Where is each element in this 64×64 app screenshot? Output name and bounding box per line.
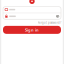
button[interactable]	[3, 13, 61, 19]
staticText: Sign in	[25, 27, 39, 32]
button[interactable]: Forgot password?	[0, 19, 64, 26]
button[interactable]	[3, 7, 61, 13]
staticText: Forgot password?	[38, 21, 61, 24]
button[interactable]: Sign in	[0, 26, 64, 34]
